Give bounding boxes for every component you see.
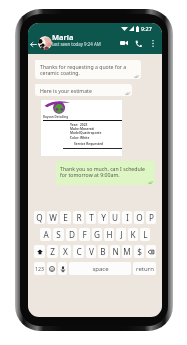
staticText: Y <box>101 212 106 223</box>
button[interactable]: S <box>53 228 64 241</box>
staticText: K <box>130 229 136 240</box>
button[interactable]: L <box>140 228 150 241</box>
button[interactable]: C <box>73 245 84 258</box>
staticText: N <box>112 246 119 257</box>
button[interactable]: Backspace <box>146 245 156 258</box>
staticText: Color: <box>70 136 80 140</box>
staticText: Model: <box>70 131 80 139</box>
staticText: B <box>100 246 106 257</box>
staticText: Service Requested <box>74 142 104 146</box>
staticText: Make: <box>70 127 80 131</box>
staticText: R <box>76 212 82 223</box>
staticText: W <box>49 212 57 223</box>
staticText: X <box>63 246 68 257</box>
button[interactable]: Emoji <box>47 262 56 275</box>
staticText: Quattroporte <box>80 131 102 135</box>
staticText: S <box>56 229 61 240</box>
staticText: H <box>106 229 113 240</box>
button[interactable]: $ <box>134 245 144 258</box>
staticText: Maserati <box>80 127 95 131</box>
button[interactable]: I <box>122 211 132 224</box>
button[interactable]: Z <box>47 245 58 258</box>
staticText: T <box>89 212 94 223</box>
button[interactable]: Voice call <box>132 35 145 51</box>
staticText: Rayson Detailing <box>43 115 69 119</box>
button[interactable]: Shift <box>34 245 45 258</box>
staticText: 123 <box>35 265 44 272</box>
button[interactable]: K <box>128 228 138 241</box>
staticText: Thank you so much, can I schedule for to… <box>60 165 152 179</box>
button[interactable]: Y <box>98 211 108 224</box>
staticText: P <box>149 212 154 223</box>
staticText: space <box>92 265 109 273</box>
button[interactable]: V <box>86 245 96 258</box>
button[interactable]: A <box>40 228 51 241</box>
button[interactable]: B <box>98 245 108 258</box>
button[interactable]: Video call <box>117 35 130 51</box>
button[interactable]: O <box>134 211 144 224</box>
button[interactable]: F <box>79 228 90 241</box>
staticText: F <box>82 229 87 240</box>
staticText: 2023 <box>80 123 88 127</box>
button[interactable]: W <box>47 211 58 224</box>
staticText: Q <box>36 212 43 223</box>
button[interactable]: U <box>110 211 120 224</box>
button[interactable]: Thanks for requesting a quote for a cera… <box>35 60 141 79</box>
button[interactable]: Rayson Detailing <box>41 100 122 156</box>
staticText: E <box>63 212 68 223</box>
button[interactable]: E <box>60 211 71 224</box>
button[interactable]: Here is your estimate <box>35 84 132 96</box>
staticText: Thanks for requesting a quote for a cera… <box>40 63 132 77</box>
staticText: Maria <box>52 32 74 42</box>
button[interactable]: M <box>122 245 132 258</box>
button[interactable]: R <box>73 211 84 224</box>
button[interactable]: 123 <box>34 262 45 275</box>
button[interactable]: Voice input <box>58 262 67 275</box>
staticText: White <box>80 136 90 140</box>
staticText: Z <box>50 246 55 257</box>
button[interactable]: D <box>66 228 77 241</box>
button[interactable]: P <box>146 211 156 224</box>
button[interactable]: Profile photo <box>38 36 52 50</box>
button[interactable]: T <box>86 211 96 224</box>
button[interactable]: N <box>110 245 120 258</box>
button[interactable]: H <box>104 228 114 241</box>
staticText: M <box>123 246 131 257</box>
staticText: Year: <box>70 123 80 127</box>
staticText: last seen today 9:24 AM <box>52 41 101 47</box>
button[interactable]: J <box>116 228 126 241</box>
button[interactable]: space <box>69 262 131 275</box>
staticText: U <box>112 212 118 223</box>
button[interactable]: Q <box>34 211 45 224</box>
staticText: V <box>89 246 94 257</box>
staticText: C <box>76 246 82 257</box>
button[interactable]: Thank you so much, can I schedule for to… <box>56 161 155 185</box>
staticText: L <box>143 229 148 240</box>
button[interactable]: Back <box>29 34 38 54</box>
button[interactable]: X <box>60 245 71 258</box>
staticText: Here is your estimate <box>40 87 92 94</box>
staticText: A <box>43 229 49 240</box>
staticText: return <box>136 265 154 273</box>
staticText: $ <box>137 246 142 257</box>
staticText: O <box>136 212 143 223</box>
staticText: I <box>126 212 129 223</box>
staticText: 9:27 <box>141 25 152 32</box>
staticText: G <box>94 229 100 240</box>
button[interactable]: More options <box>148 35 158 51</box>
staticText: J <box>120 229 123 240</box>
button[interactable]: G <box>92 228 102 241</box>
button[interactable]: return <box>133 262 156 275</box>
staticText: D <box>69 229 75 240</box>
